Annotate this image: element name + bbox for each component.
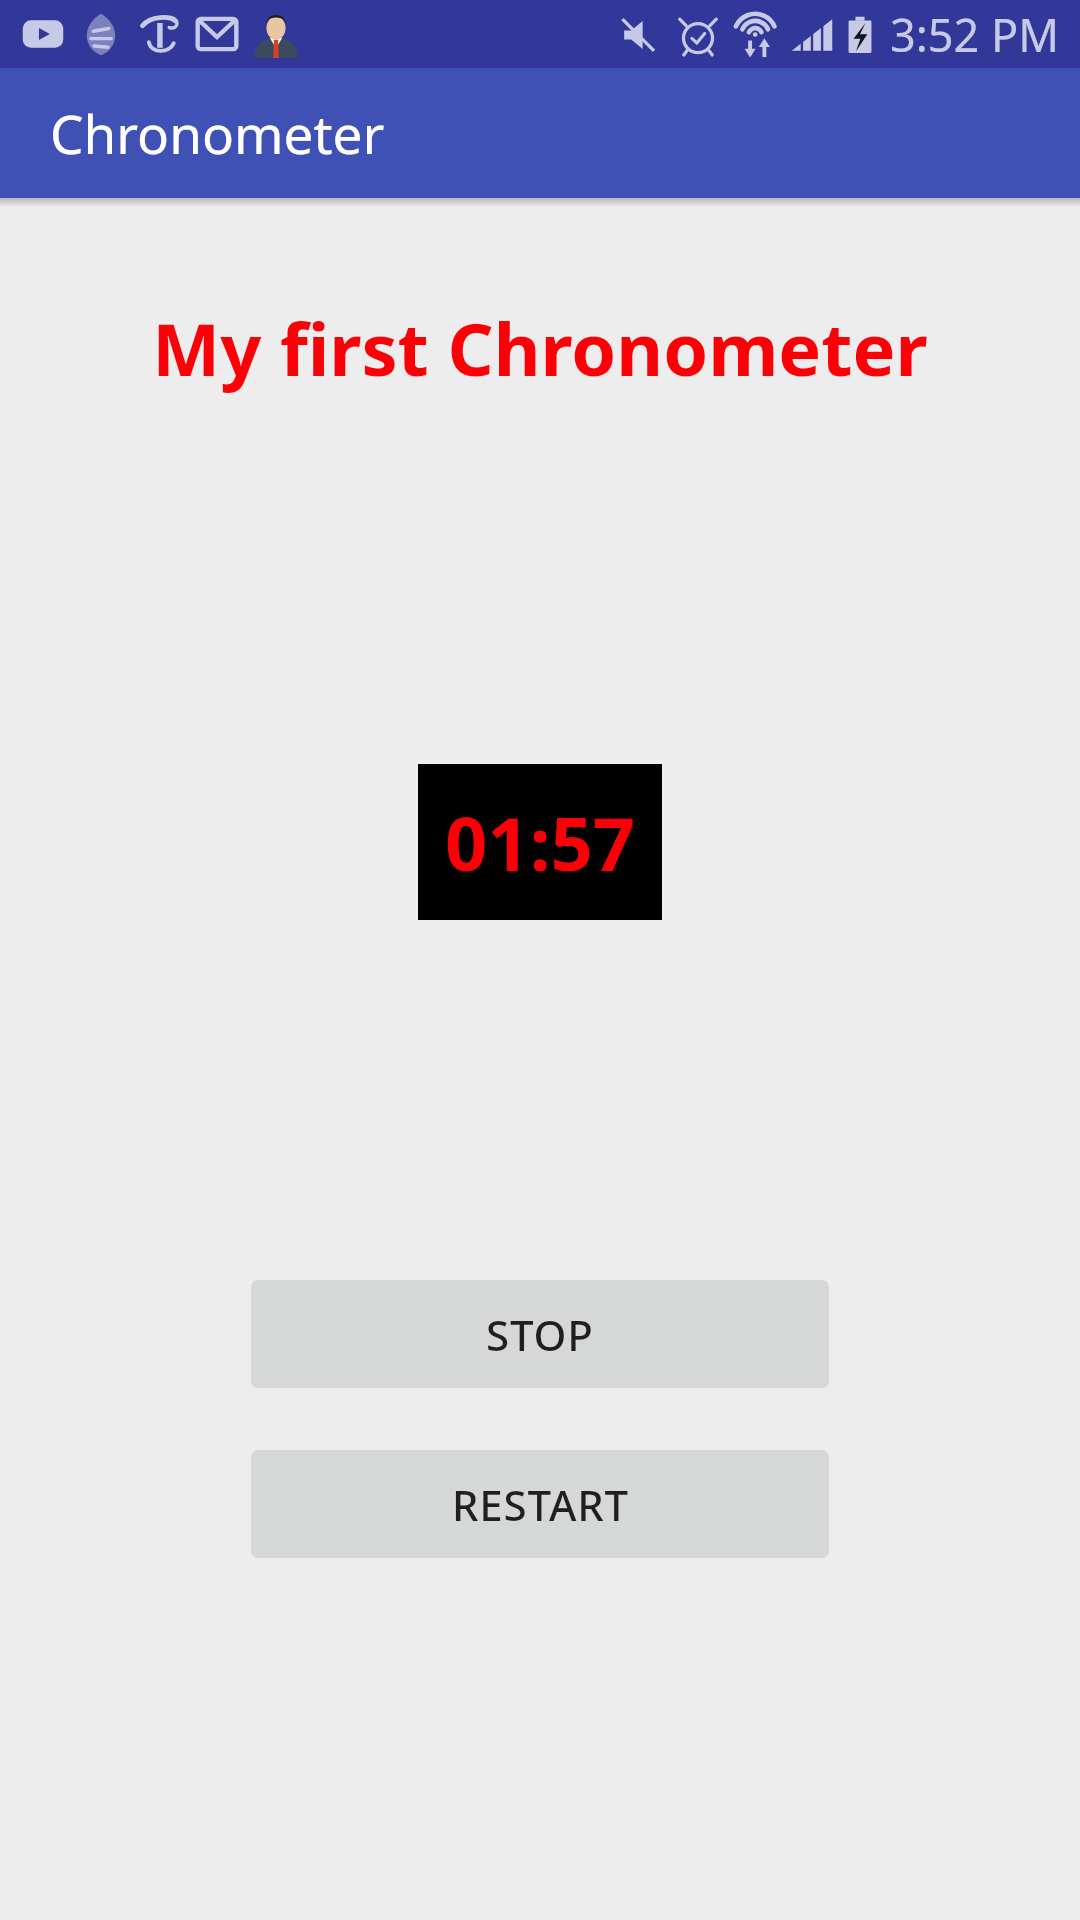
staticText: My first Chronometer <box>152 299 928 397</box>
staticText: 3:52 PM <box>890 4 1060 65</box>
staticText: 01:57 <box>445 792 636 893</box>
staticText: RESTART <box>452 1476 629 1533</box>
button[interactable]: STOP <box>251 1280 829 1388</box>
staticText: STOP <box>486 1306 594 1363</box>
button[interactable]: RESTART <box>251 1450 829 1558</box>
staticText: Chronometer <box>50 97 385 169</box>
